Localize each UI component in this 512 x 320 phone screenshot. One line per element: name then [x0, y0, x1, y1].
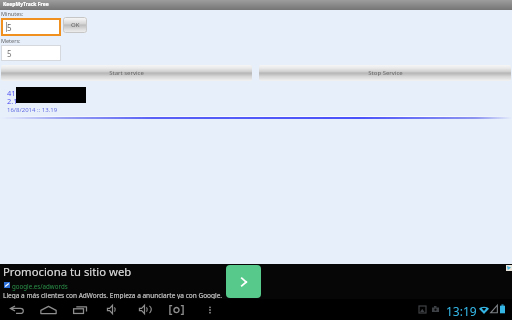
- staticText: 5: [7, 48, 12, 59]
- button[interactable]: 5: [1, 45, 61, 61]
- button[interactable]: Screenshot: [166, 299, 187, 320]
- other: Ad choices: [506, 265, 512, 271]
- button[interactable]: Volume up: [134, 299, 155, 320]
- button[interactable]: 5: [1, 18, 61, 36]
- button[interactable]: Start service: [1, 65, 252, 81]
- staticText: Llega a más clientes con AdWords. Empiez…: [3, 291, 223, 300]
- staticText: 13:19: [446, 303, 477, 319]
- button[interactable]: Recent apps: [70, 299, 91, 320]
- button[interactable]: Back: [6, 299, 27, 320]
- staticText: 2.1: [7, 96, 18, 106]
- staticText: Start service: [109, 69, 144, 77]
- button[interactable]: Promociona tu sitio web: [0, 264, 512, 299]
- staticText: Minutes:: [1, 10, 24, 17]
- staticText: Promociona tu sitio web: [3, 264, 132, 279]
- button[interactable]: OK: [63, 17, 87, 33]
- button[interactable]: Home: [38, 299, 59, 320]
- staticText: Stop Service: [368, 69, 403, 77]
- staticText: google.es/adwords: [12, 282, 68, 290]
- staticText: KeepMyTrack Free: [3, 1, 49, 8]
- button[interactable]: More options: [199, 299, 220, 320]
- staticText: 5: [7, 22, 12, 33]
- button[interactable]: Stop Service: [259, 65, 511, 81]
- staticText: OK: [71, 21, 80, 29]
- staticText: 16/8/2014 :: 13.19: [7, 106, 58, 114]
- staticText: Meters:: [1, 37, 21, 44]
- staticText: 41: [7, 88, 16, 98]
- button[interactable]: Volume down: [102, 299, 123, 320]
- button[interactable]: Go to advertiser: [226, 265, 261, 298]
